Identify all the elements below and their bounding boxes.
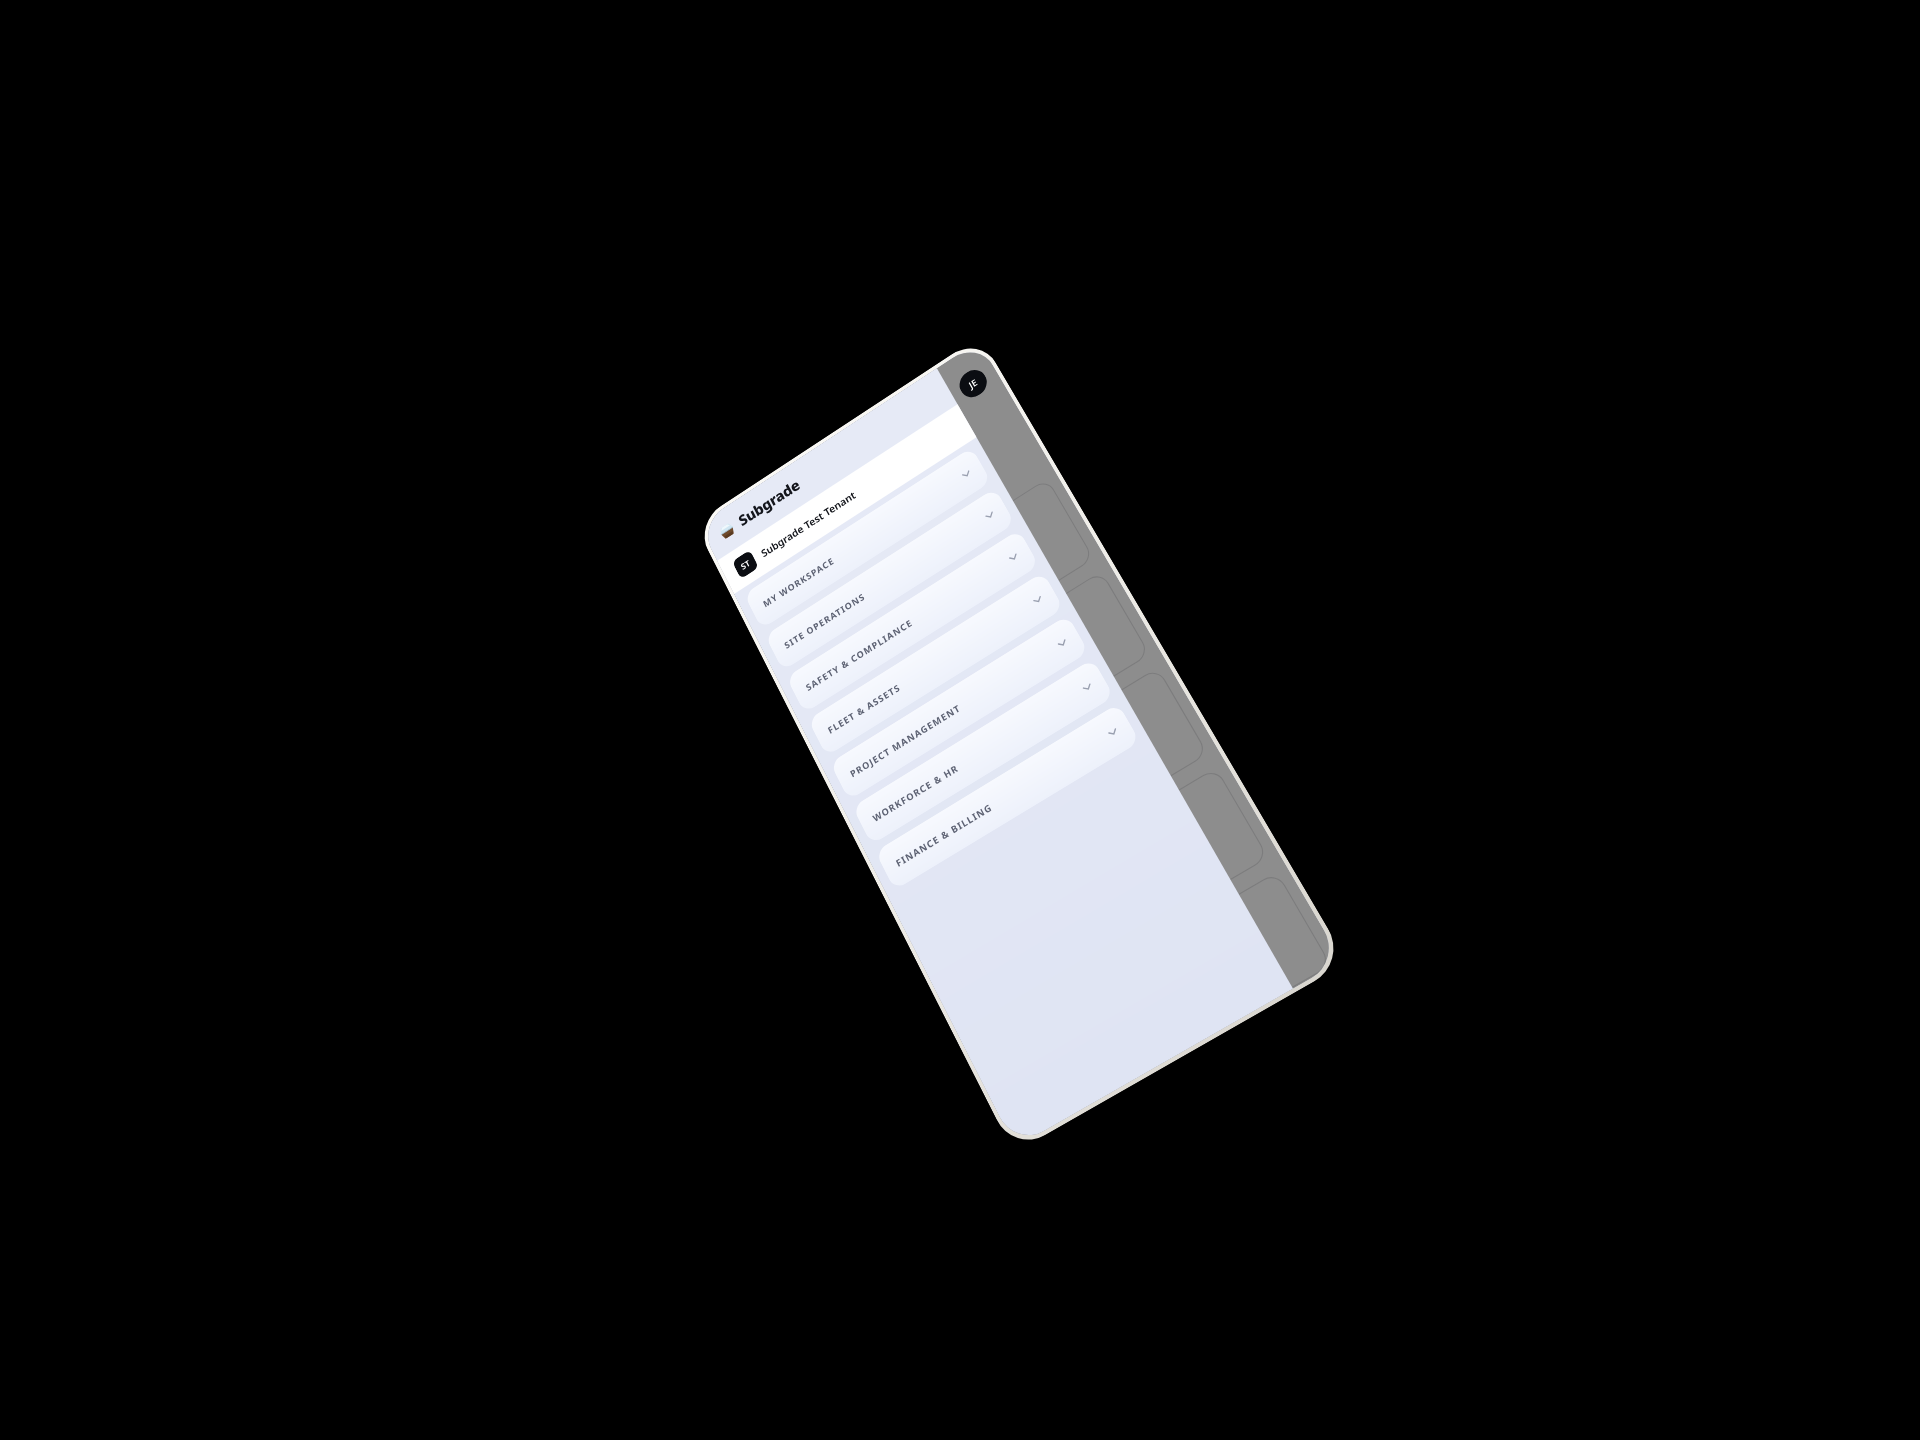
button[interactable]: Account [955,365,992,402]
button[interactable]: SAFETY & COMPLIANCE [786,529,1039,713]
staticText: FINANCE & BILLING [894,730,1111,870]
button[interactable]: Subgrade [699,368,957,561]
button[interactable]: ST [717,404,976,594]
button[interactable]: MY WORKSPACE [744,447,991,629]
button[interactable]: SITE OPERATIONS [765,488,1015,671]
button[interactable]: FINANCE & BILLING [875,703,1140,890]
staticText: JE [966,376,980,391]
staticText: SITE OPERATIONS [782,514,988,651]
button[interactable]: FLEET & ASSETS [808,572,1064,756]
staticText: MY WORKSPACE [761,473,964,610]
staticText: Subgrade [735,475,804,531]
staticText: Subgrade Test Tenant [759,487,858,560]
button[interactable]: PROJECT MANAGEMENT [830,615,1089,800]
staticText: WORKFORCE & HR [871,685,1085,825]
staticText: SAFETY & COMPLIANCE [804,556,1011,694]
button[interactable]: WORKFORCE & HR [852,659,1114,845]
staticText: ST [739,557,752,572]
staticText: PROJECT MANAGEMENT [848,641,1060,780]
staticText: FLEET & ASSETS [826,598,1036,737]
